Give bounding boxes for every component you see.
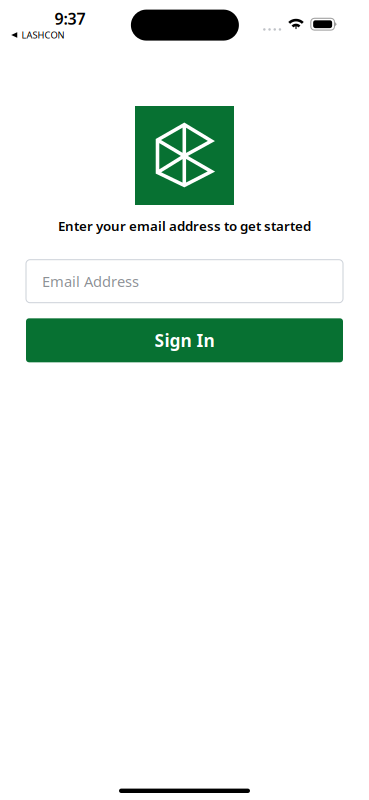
staticText: Email Address [42, 271, 139, 291]
staticText: LASHCON [21, 29, 64, 41]
staticText: Sign In [154, 329, 214, 352]
staticText: Enter your email address to get started [58, 217, 311, 235]
button[interactable]: Sign In [26, 318, 343, 362]
staticText: 9:37 [54, 8, 85, 29]
